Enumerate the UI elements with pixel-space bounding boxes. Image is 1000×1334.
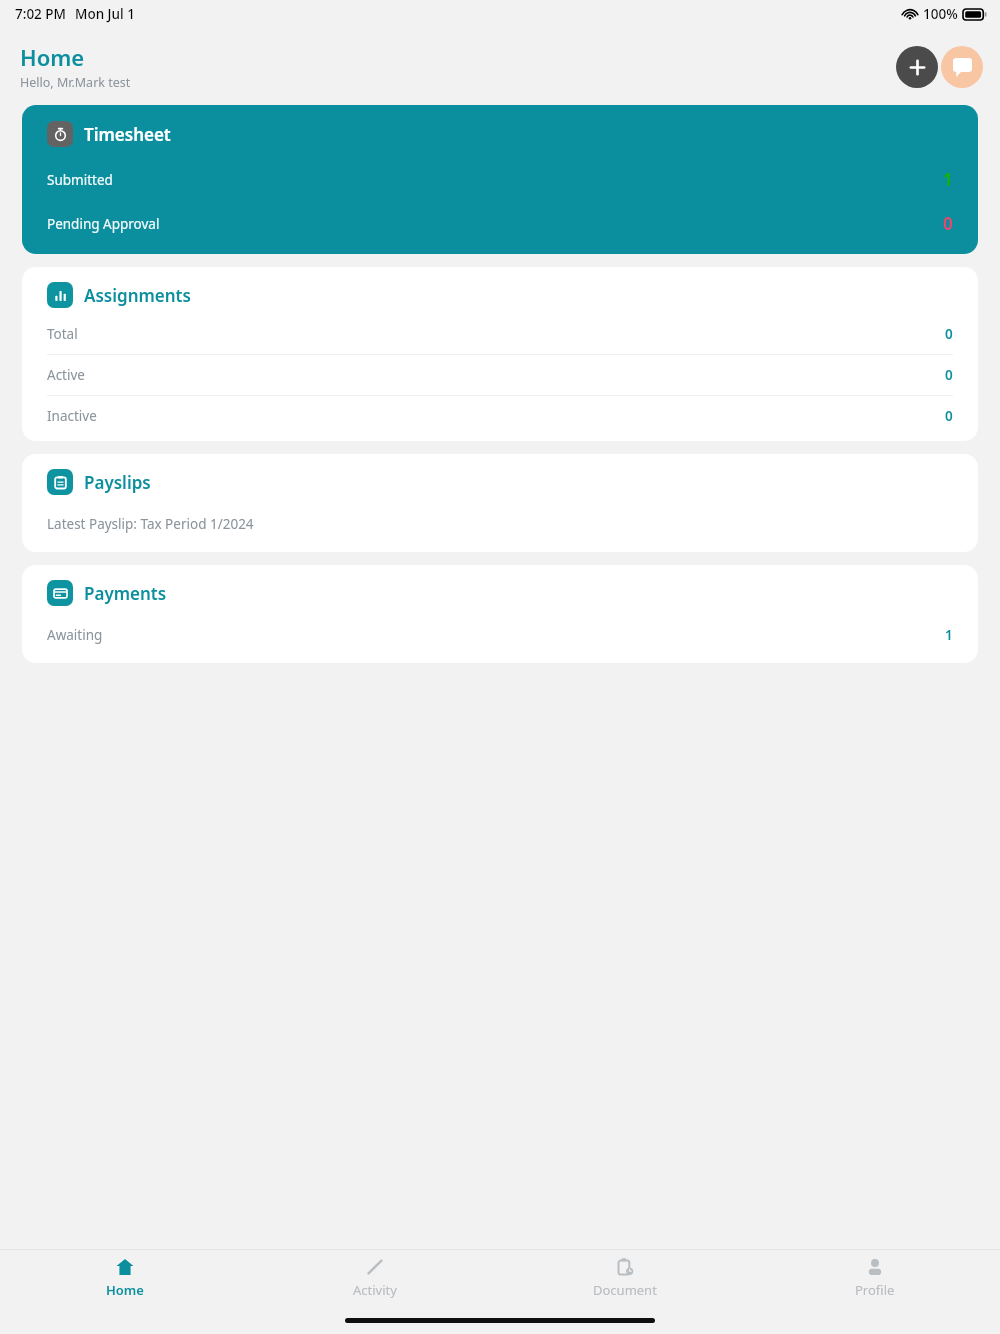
button[interactable]: Activity xyxy=(250,1250,500,1306)
button[interactable]: Timesheet xyxy=(22,105,978,254)
staticText: Submitted xyxy=(47,171,113,189)
staticText: 0 xyxy=(945,366,953,384)
button[interactable]: Messages xyxy=(941,46,983,88)
staticText: Inactive xyxy=(47,407,97,425)
staticText: Document xyxy=(593,1281,657,1299)
button[interactable]: Profile xyxy=(750,1250,1000,1306)
staticText: 7:02 PM xyxy=(15,5,66,23)
staticText: Profile xyxy=(855,1281,895,1299)
button[interactable]: Payslips xyxy=(22,454,978,552)
staticText: Activity xyxy=(353,1281,397,1299)
button[interactable]: Document xyxy=(500,1250,750,1306)
button[interactable]: Payments xyxy=(22,565,978,663)
staticText: Home xyxy=(20,42,85,72)
staticText: 100% xyxy=(923,5,958,23)
staticText: Assignments xyxy=(84,284,191,307)
staticText: Mon Jul 1 xyxy=(75,5,135,23)
staticText: Active xyxy=(47,366,85,384)
staticText: Payments xyxy=(84,582,167,605)
staticText: 1 xyxy=(945,626,953,644)
staticText: Latest Payslip: Tax Period 1/2024 xyxy=(47,515,254,533)
staticText: Total xyxy=(47,325,78,343)
staticText: Timesheet xyxy=(84,123,171,146)
button[interactable]: Assignments xyxy=(22,267,978,441)
staticText: Payslips xyxy=(84,471,151,494)
staticText: Pending Approval xyxy=(47,215,160,233)
staticText: 0 xyxy=(945,325,953,343)
staticText: Home xyxy=(106,1281,144,1299)
button[interactable]: Home xyxy=(0,1250,250,1306)
staticText: 1 xyxy=(943,168,953,191)
staticText: Awaiting xyxy=(47,626,103,644)
staticText: 0 xyxy=(945,407,953,425)
button[interactable]: Add xyxy=(896,46,938,88)
staticText: 0 xyxy=(943,212,953,235)
staticText: Hello, Mr.Mark test xyxy=(20,74,131,91)
